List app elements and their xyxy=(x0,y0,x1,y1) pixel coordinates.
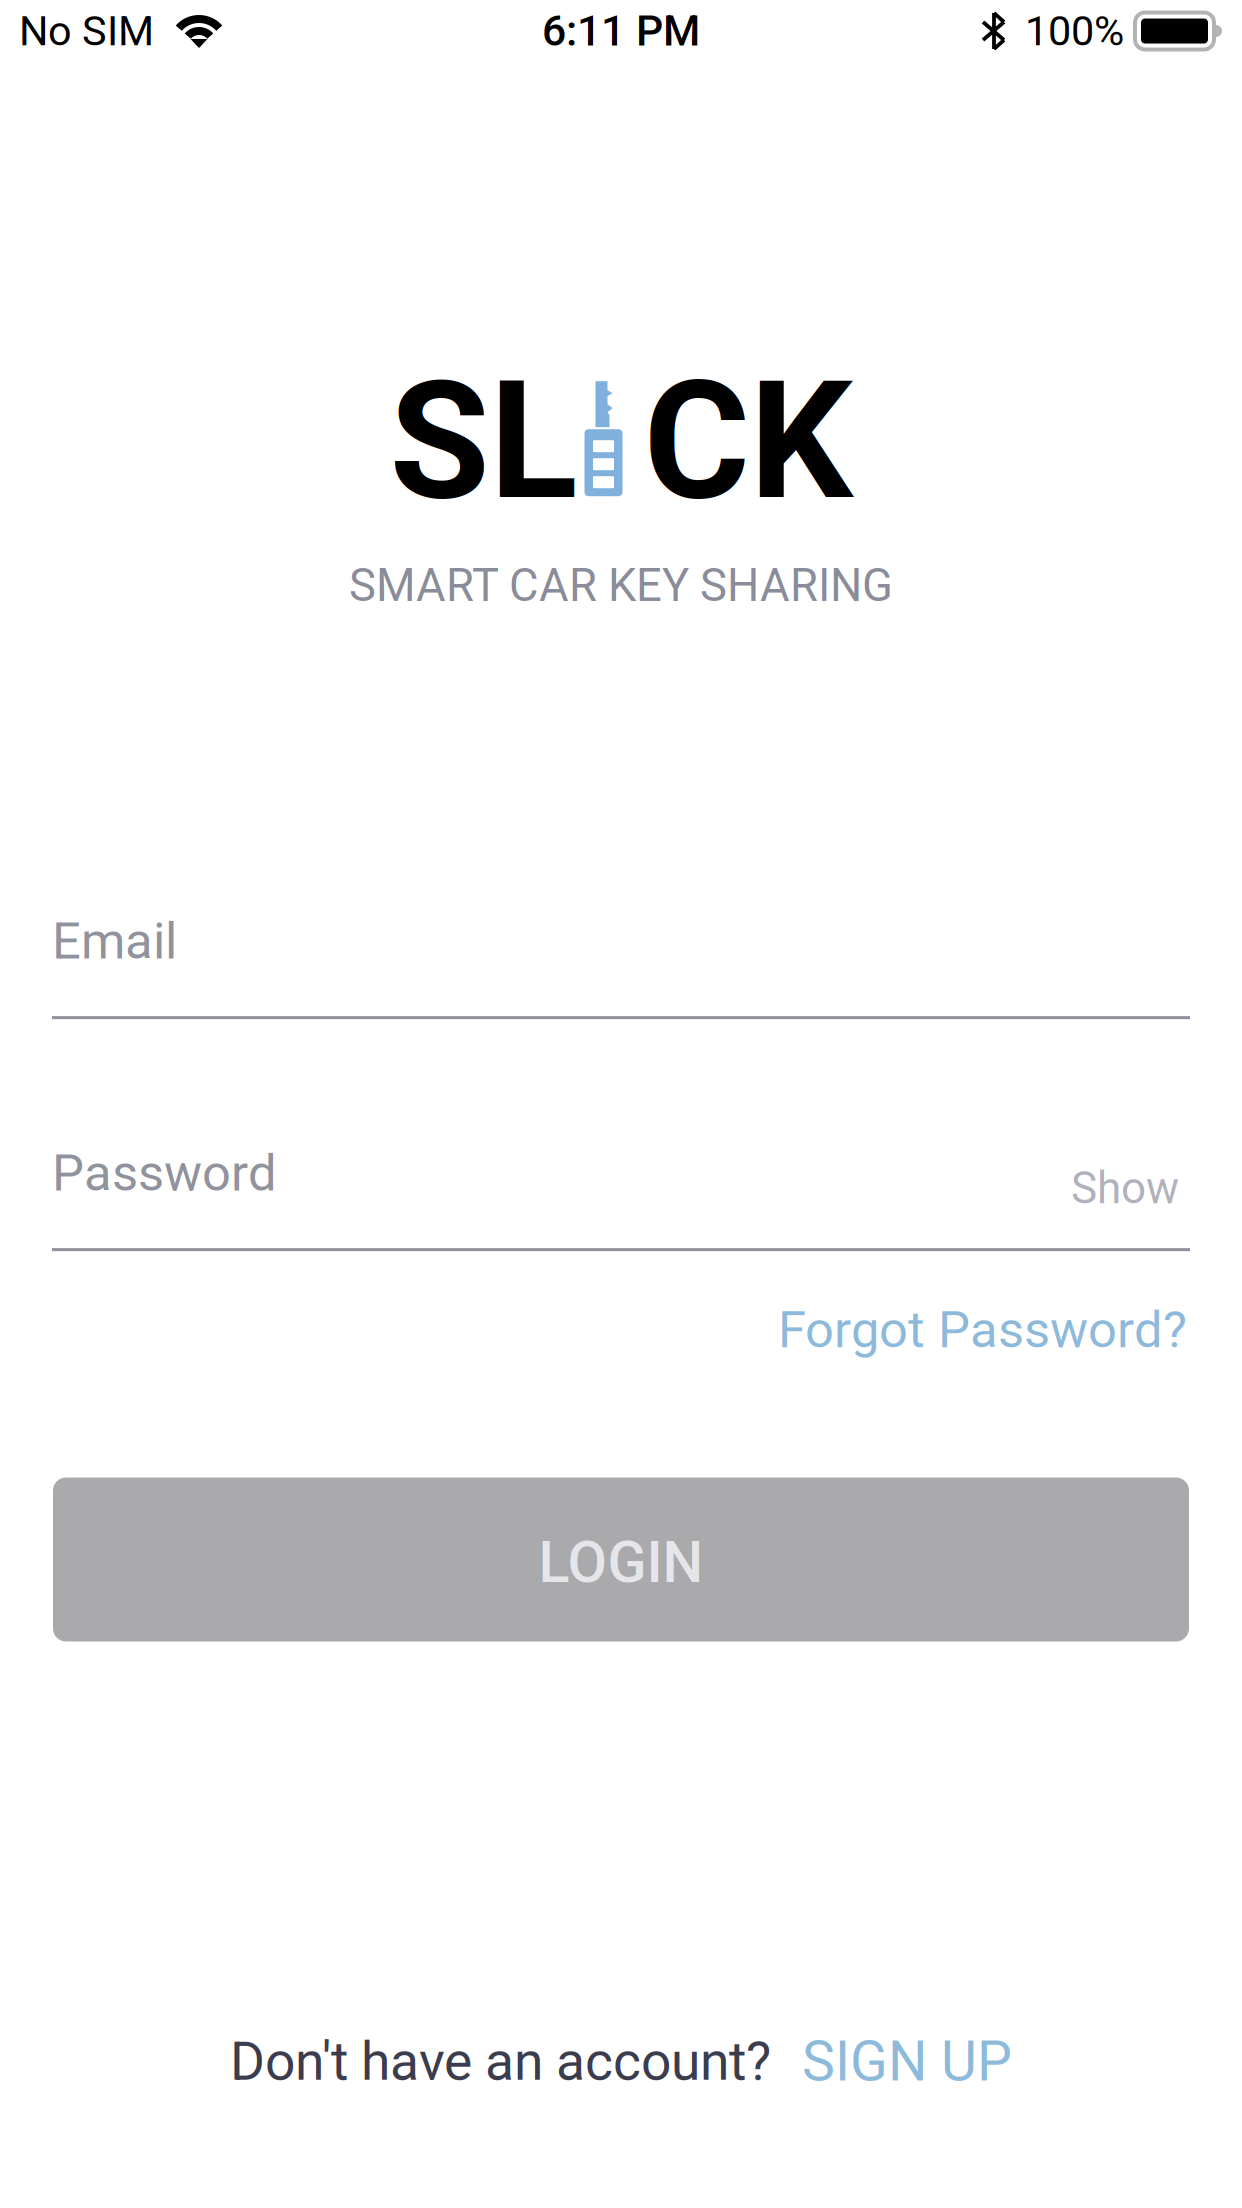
staticText: Email xyxy=(52,911,177,971)
staticText: LOGIN xyxy=(538,1529,703,1596)
button[interactable]: SIGN UP xyxy=(802,2029,1012,2094)
staticText: 6:11 PM xyxy=(542,6,700,56)
button[interactable]: LOGIN xyxy=(53,1477,1189,1641)
staticText: SMART CAR KEY SHARING xyxy=(349,559,893,612)
staticText: Show xyxy=(1071,1162,1179,1214)
staticText: Don't have an account? xyxy=(230,2030,771,2093)
staticText: SIGN UP xyxy=(802,2029,1012,2094)
button[interactable]: Password xyxy=(52,1147,1190,1199)
button[interactable]: Email xyxy=(52,915,1190,967)
staticText: Password xyxy=(52,1143,277,1203)
staticText: No SIM xyxy=(19,7,154,55)
staticText: 100% xyxy=(1025,7,1124,55)
staticText: SL xyxy=(389,346,577,537)
button[interactable]: Show xyxy=(1082,1147,1190,1199)
staticText: Forgot Password? xyxy=(778,1300,1187,1359)
staticText: CK xyxy=(643,346,852,537)
button[interactable]: Forgot Password? xyxy=(778,1300,1187,1359)
